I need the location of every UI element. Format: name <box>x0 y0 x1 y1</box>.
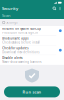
staticText: Security <box>2 6 18 11</box>
button[interactable]: Check for updates <box>0 45 64 55</box>
button[interactable]: Run scan <box>4 86 60 97</box>
staticText: Check for updates <box>2 46 28 50</box>
staticText: Download new definitions <box>2 50 39 54</box>
button[interactable]: Search <box>52 6 56 10</box>
button[interactable]: Resume on system start-up <box>0 26 64 35</box>
button[interactable]: Block unsafe apps <box>0 36 64 45</box>
button[interactable]: More options <box>56 6 62 10</box>
staticText: Settings <box>6 21 17 24</box>
staticText: Never show warning banners <box>2 60 41 64</box>
staticText: Check catalog before install <box>2 41 40 44</box>
staticText: Scan <box>2 13 10 18</box>
button[interactable]: Disable alerts <box>0 55 64 65</box>
staticText: Disable alerts <box>2 56 22 60</box>
staticText: Run scan <box>22 89 41 94</box>
staticText: Resume on system start-up <box>2 27 41 30</box>
staticText: Protection runs at sign-in <box>2 31 38 34</box>
staticText: Block unsafe apps <box>2 37 28 40</box>
